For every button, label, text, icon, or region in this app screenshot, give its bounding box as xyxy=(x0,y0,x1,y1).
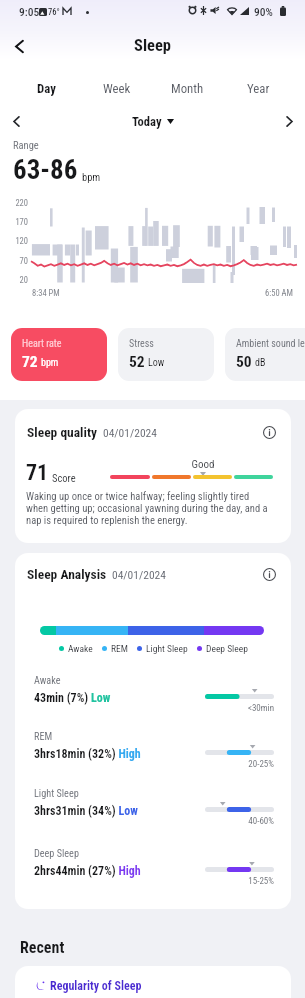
staticText: Week xyxy=(103,81,131,96)
staticText: 04/01/2024 xyxy=(112,568,166,581)
staticText: Light Sleep xyxy=(34,788,79,800)
button[interactable]: Today xyxy=(132,114,174,129)
button[interactable]: Stress xyxy=(118,328,214,381)
staticText: dB xyxy=(255,357,266,369)
staticText: 220 xyxy=(8,198,28,208)
staticText: 70 xyxy=(8,256,28,266)
staticText: Recent xyxy=(20,938,65,957)
staticText: Today xyxy=(132,114,162,129)
staticText: bpm xyxy=(41,357,59,369)
staticText: Low xyxy=(148,357,165,369)
staticText: 9:05 xyxy=(19,5,40,18)
staticText: 20 xyxy=(8,275,28,285)
staticText: REM xyxy=(111,643,128,654)
staticText: 6:50 AM xyxy=(265,288,293,298)
staticText: 52 xyxy=(129,353,145,371)
staticText: Waking up once or twice halfway; feeling… xyxy=(26,490,273,526)
staticText: Sleep xyxy=(134,36,172,55)
staticText: Light Sleep xyxy=(146,643,188,654)
staticText: bpm xyxy=(82,171,101,183)
staticText: 76° xyxy=(48,7,60,17)
staticText: Sleep Analysis xyxy=(27,566,107,582)
staticText: 3hrs31min (34%) Low xyxy=(34,804,138,818)
staticText: Ambient sound level xyxy=(236,338,305,350)
staticText: Regularity of Sleep xyxy=(50,979,142,993)
button[interactable]: Ambient sound level xyxy=(225,328,305,381)
staticText: 90% xyxy=(254,5,273,18)
staticText: Day xyxy=(37,81,56,96)
staticText: 50 xyxy=(236,353,252,371)
button[interactable]: Previous day xyxy=(3,108,29,134)
button[interactable]: Regularity of Sleep xyxy=(15,966,291,998)
staticText: 170 xyxy=(8,217,28,227)
button[interactable]: Month xyxy=(152,75,223,101)
staticText: Deep Sleep xyxy=(206,643,248,654)
staticText: Stress xyxy=(129,338,209,350)
button[interactable]: Day xyxy=(11,75,81,101)
staticText: 2hrs44min (27%) High xyxy=(34,864,141,878)
staticText: Good xyxy=(181,458,225,471)
button[interactable]: Info xyxy=(259,422,279,442)
staticText: Month xyxy=(171,81,204,96)
staticText: 04/01/2024 xyxy=(103,426,157,439)
button[interactable]: Year xyxy=(223,75,294,101)
button[interactable]: Week xyxy=(81,75,152,101)
staticText: Deep Sleep xyxy=(34,848,79,860)
staticText: Awake xyxy=(34,675,61,687)
staticText: 20-25% xyxy=(205,759,274,770)
staticText: 71 xyxy=(26,460,49,486)
staticText: <30min xyxy=(205,703,274,714)
button[interactable]: Back xyxy=(5,32,33,60)
button[interactable]: Info xyxy=(259,564,279,584)
staticText: 40-60% xyxy=(205,816,274,827)
staticText: Sleep quality xyxy=(27,424,98,440)
staticText: Score xyxy=(52,472,76,484)
staticText: 63-86 xyxy=(13,154,78,186)
staticText: Range xyxy=(13,139,39,151)
button[interactable]: Heart rate xyxy=(11,328,107,381)
staticText: 120 xyxy=(8,236,28,246)
staticText: Year xyxy=(247,81,270,96)
staticText: 8:34 PM xyxy=(32,288,60,298)
staticText: 72 xyxy=(22,353,38,371)
staticText: 15-25% xyxy=(205,876,274,887)
staticText: 43min (7%) Low xyxy=(34,691,111,705)
button[interactable]: Next day xyxy=(276,108,302,134)
staticText: Awake xyxy=(68,643,93,654)
staticText: 3hrs18min (32%) High xyxy=(34,747,141,761)
staticText: Heart rate xyxy=(22,338,102,350)
staticText: REM xyxy=(34,731,53,743)
